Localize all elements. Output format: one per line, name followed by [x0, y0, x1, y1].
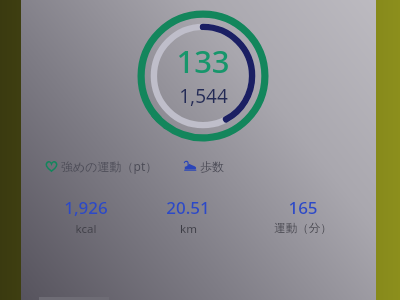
button[interactable]: 165 [239, 194, 366, 237]
button[interactable]: 歩数 [182, 157, 226, 176]
staticText: 歩数 [200, 159, 224, 174]
button[interactable]: アクティビティの進捗 [137, 10, 269, 142]
staticText: kcal [75, 221, 97, 237]
button[interactable]: 1,926 [35, 194, 137, 239]
staticText: 133 [176, 40, 230, 82]
other: 強めの運動 [45, 160, 58, 173]
staticText: 20.51 [166, 196, 210, 219]
staticText: 1,544 [179, 83, 228, 109]
staticText: 165 [288, 196, 318, 219]
staticText: 運動（分） [274, 221, 332, 235]
staticText: 1,926 [64, 196, 108, 219]
staticText: 強めの運動（pt） [61, 158, 158, 174]
button[interactable]: 強めの運動 [43, 156, 160, 176]
button[interactable]: 20.51 [137, 194, 239, 239]
other: 歩数 [184, 160, 197, 173]
staticText: km [180, 221, 197, 237]
